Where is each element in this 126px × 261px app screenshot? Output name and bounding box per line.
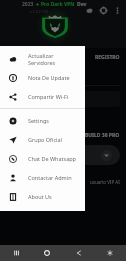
staticText: 0 :: TIEMPO <box>9 114 34 120</box>
staticText: REGISTRO <box>95 54 120 61</box>
button[interactable]: Screenshot <box>94 245 126 261</box>
staticText: Nota De Update <box>28 74 70 81</box>
staticText: Dev <box>77 1 87 8</box>
staticText: About Us <box>28 193 52 200</box>
button[interactable]: Home <box>31 245 62 261</box>
button[interactable]: About Us <box>0 187 85 206</box>
button[interactable]: Contactar Admin <box>0 168 85 187</box>
staticText: Chat De Whatsapp <box>28 155 76 162</box>
staticText: Servidores Mexico <box>9 98 44 103</box>
button[interactable]: Cloud <box>82 3 96 17</box>
staticText: Pro Dark VPN <box>41 1 75 8</box>
staticText: 2023 <box>22 1 34 8</box>
button[interactable]: Compartir Wi-Fi <box>0 87 85 106</box>
button[interactable]: More options <box>110 3 124 17</box>
button[interactable]: Actualizar Servidores <box>0 49 85 68</box>
button[interactable]: Chat De Whatsapp <box>0 149 85 168</box>
staticText: Settings <box>28 117 49 124</box>
staticText: Col. Ch-Em Co. <box>9 93 37 98</box>
button[interactable]: Settings <box>96 3 110 17</box>
button[interactable]: Grupo Oficial <box>0 130 85 149</box>
staticText: Grupo Oficial <box>28 136 62 143</box>
staticText: Actualizar Servidores <box>28 52 81 66</box>
staticText: BUILD 36 PRO <box>85 132 120 139</box>
staticText: v.1.2.3 (10) <box>30 9 48 14</box>
button[interactable]: Back <box>62 245 94 261</box>
staticText: Compartir Wi-Fi <box>28 93 69 100</box>
button[interactable]: Recents <box>0 245 31 261</box>
staticText: Conectado al Servidor <box>6 77 53 83</box>
button[interactable] <box>6 145 120 165</box>
staticText: usuario VIP AI <box>90 179 120 185</box>
staticText: Contactar Admin <box>28 174 72 181</box>
button[interactable]: Settings <box>0 111 85 130</box>
button[interactable]: Nota De Update <box>0 68 85 87</box>
